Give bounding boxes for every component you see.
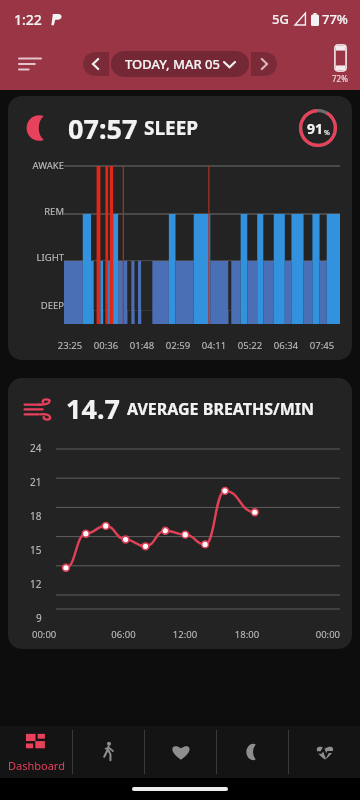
staticText: AVERAGE BREATHS/MIN [127,398,315,420]
button[interactable]: Sleep [217,726,288,778]
staticText: LIGHT [36,251,64,264]
button[interactable]: Tracker battery 72 percent [332,44,348,84]
staticText: 77% [322,10,348,28]
staticText: 1:22 [14,10,42,29]
staticText: AWAKE [32,159,64,172]
button[interactable]: Next day [251,52,277,76]
staticText: 18:00 [216,628,278,641]
staticText: 01:48 [124,339,160,352]
button[interactable]: Heart [145,726,216,778]
staticText: 06:34 [268,339,304,352]
staticText: % [324,128,330,138]
staticText: Dashboard [8,758,65,773]
staticText: 07:45 [304,339,340,352]
staticText: 07:57 [68,110,138,147]
button[interactable]: Dashboard [0,726,72,778]
button[interactable]: 14.7 [8,378,352,649]
staticText: 23:25 [52,339,88,352]
staticText: 21 [30,475,42,489]
staticText: 12:00 [154,628,216,641]
staticText: 91 [307,119,324,138]
staticText: 15 [30,543,42,557]
staticText: 12 [30,577,42,591]
staticText: DEEP [40,299,64,312]
staticText: 18 [30,509,42,523]
button[interactable]: Menu [10,44,50,84]
staticText: 9 [36,611,42,625]
staticText: 05:22 [232,339,268,352]
staticText: 24 [30,441,42,455]
staticText: SLEEP [144,115,199,141]
staticText: 00:00 [278,628,340,641]
button[interactable]: Heart rate [289,726,360,778]
staticText: 04:11 [196,339,232,352]
staticText: 72% [332,73,348,84]
staticText: REM [44,205,64,218]
button[interactable]: TODAY, MAR 05 [111,51,249,77]
staticText: 00:00 [32,628,93,641]
button[interactable]: Activity [73,726,144,778]
staticText: TODAY, MAR 05 [125,55,220,73]
staticText: 06:00 [93,628,154,641]
button[interactable]: Previous day [83,52,109,76]
staticText: 14.7 [66,390,120,427]
staticText: 5G [272,10,289,28]
staticText: 00:36 [88,339,124,352]
button[interactable]: 07:57 [8,96,352,360]
staticText: 02:59 [160,339,196,352]
